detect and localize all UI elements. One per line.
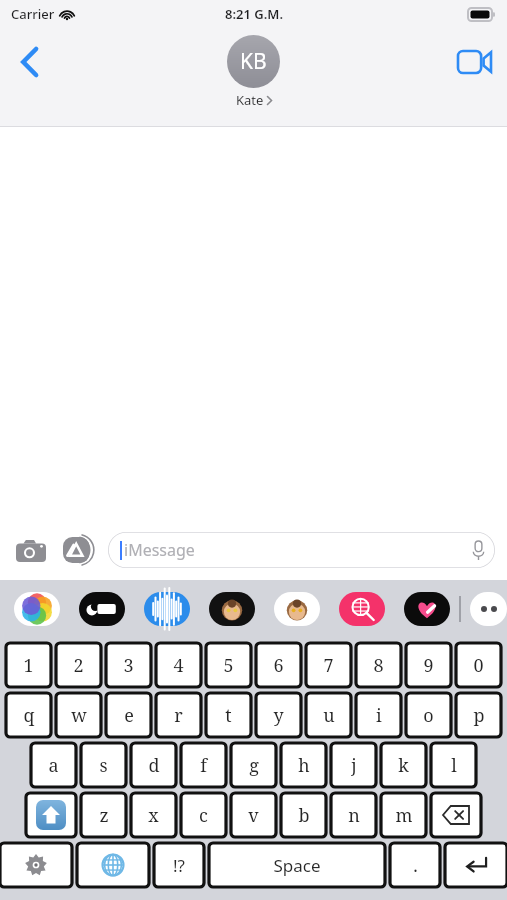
button[interactable]: 3: [106, 643, 151, 687]
staticText: r: [174, 703, 183, 728]
button[interactable]: Settings: [0, 843, 72, 887]
staticText: Carrier: [11, 5, 55, 23]
button[interactable]: w: [56, 693, 101, 737]
button[interactable]: Space: [209, 843, 385, 887]
button[interactable]: o: [406, 693, 451, 737]
staticText: 2: [73, 653, 84, 678]
button[interactable]: KB: [227, 35, 280, 109]
button[interactable]: q: [6, 693, 51, 737]
button[interactable]: !?: [154, 843, 204, 887]
button[interactable]: 5: [206, 643, 251, 687]
button[interactable]: Change keyboard: [77, 843, 149, 887]
staticText: d: [148, 753, 160, 778]
staticText: o: [423, 703, 434, 728]
button[interactable]: j: [331, 743, 376, 787]
button[interactable]: n: [331, 793, 376, 837]
staticText: t: [225, 703, 232, 728]
staticText: e: [124, 703, 134, 728]
button[interactable]: h: [281, 743, 326, 787]
staticText: y: [273, 703, 284, 728]
button[interactable]: y: [256, 693, 301, 737]
staticText: Kate: [236, 91, 264, 109]
staticText: 8: [373, 653, 384, 678]
button[interactable]: iMessage app: [14, 592, 60, 626]
button[interactable]: iMessage app: [144, 592, 190, 626]
staticText: q: [23, 703, 35, 728]
staticText: w: [71, 703, 87, 728]
button[interactable]: a: [31, 743, 76, 787]
button[interactable]: e: [106, 693, 151, 737]
button[interactable]: s: [81, 743, 126, 787]
button[interactable]: Shift: [26, 793, 76, 837]
staticText: b: [298, 803, 310, 828]
staticText: l: [451, 753, 457, 778]
button[interactable]: Backspace: [431, 793, 481, 837]
button[interactable]: i: [356, 693, 401, 737]
button[interactable]: l: [431, 743, 476, 787]
button[interactable]: iMessage app: [339, 592, 385, 626]
button[interactable]: z: [81, 793, 126, 837]
button[interactable]: v: [231, 793, 276, 837]
staticText: iMessage: [124, 539, 195, 561]
button[interactable]: .: [390, 843, 440, 887]
button[interactable]: u: [306, 693, 351, 737]
staticText: g: [249, 753, 259, 778]
button[interactable]: 7: [306, 643, 351, 687]
button[interactable]: 1: [6, 643, 51, 687]
button[interactable]: k: [381, 743, 426, 787]
button[interactable]: g: [231, 743, 276, 787]
button[interactable]: x: [131, 793, 176, 837]
button[interactable]: 4: [156, 643, 201, 687]
button[interactable]: 2: [56, 643, 101, 687]
staticText: a: [48, 753, 59, 778]
button[interactable]: p: [456, 693, 501, 737]
staticText: 1: [23, 653, 34, 678]
staticText: m: [395, 803, 413, 828]
staticText: KB: [240, 47, 267, 76]
button[interactable]: iMessage app: [79, 592, 125, 626]
staticText: s: [99, 753, 108, 778]
button[interactable]: FaceTime video call: [453, 40, 497, 84]
button[interactable]: c: [181, 793, 226, 837]
button[interactable]: iMessage app: [404, 592, 450, 626]
staticText: c: [199, 803, 208, 828]
button[interactable]: 9: [406, 643, 451, 687]
staticText: Space: [273, 854, 321, 877]
button[interactable]: f: [181, 743, 226, 787]
staticText: 4: [173, 653, 184, 678]
staticText: j: [351, 753, 357, 778]
staticText: n: [348, 803, 360, 828]
staticText: !?: [173, 854, 185, 877]
staticText: x: [148, 803, 159, 828]
staticText: k: [398, 753, 409, 778]
button[interactable]: m: [381, 793, 426, 837]
staticText: .: [413, 853, 418, 878]
staticText: 3: [123, 653, 134, 678]
button[interactable]: iMessage: [108, 532, 495, 568]
staticText: h: [298, 753, 310, 778]
button[interactable]: d: [131, 743, 176, 787]
staticText: u: [323, 703, 335, 728]
button[interactable]: Return: [445, 843, 507, 887]
button[interactable]: 8: [356, 643, 401, 687]
staticText: 7: [323, 653, 334, 678]
button[interactable]: 6: [256, 643, 301, 687]
staticText: v: [248, 803, 259, 828]
button[interactable]: More apps: [470, 592, 507, 626]
staticText: z: [99, 803, 109, 828]
button[interactable]: r: [156, 693, 201, 737]
staticText: i: [376, 703, 382, 728]
button[interactable]: Apps: [60, 531, 98, 569]
staticText: 6: [273, 653, 284, 678]
staticText: 8:21 G.M.: [225, 5, 283, 23]
button[interactable]: b: [281, 793, 326, 837]
button[interactable]: iMessage app: [274, 592, 320, 626]
button[interactable]: 0: [456, 643, 501, 687]
button[interactable]: iMessage app: [209, 592, 255, 626]
staticText: p: [473, 703, 485, 728]
staticText: 9: [423, 653, 434, 678]
staticText: 5: [223, 653, 234, 678]
button[interactable]: Back: [8, 40, 52, 84]
button[interactable]: Camera: [12, 531, 50, 569]
button[interactable]: t: [206, 693, 251, 737]
